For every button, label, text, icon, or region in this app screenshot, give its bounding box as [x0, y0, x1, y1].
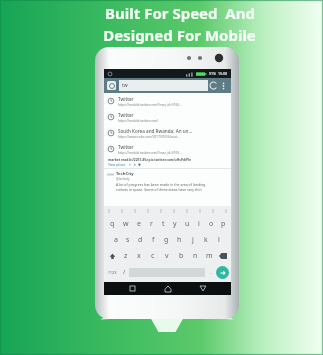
- button[interactable]: y: [169, 216, 181, 232]
- staticText: Built For Speed And: [105, 3, 255, 23]
- button[interactable]: Twitter: [104, 93, 231, 109]
- button[interactable]: f: [147, 232, 160, 248]
- button[interactable]: t: [157, 216, 169, 232]
- staticText: a: [114, 235, 118, 245]
- button[interactable]: x: [132, 248, 146, 264]
- button[interactable]: More options: [219, 81, 228, 90]
- staticText: h: [177, 235, 182, 245]
- staticText: rockets in space. Some of these areas ha…: [116, 187, 202, 192]
- button[interactable]: h: [173, 232, 186, 248]
- button[interactable]: e: [132, 216, 145, 232]
- button[interactable]: k: [199, 232, 212, 248]
- button[interactable]: Recents: [124, 282, 140, 295]
- staticText: q: [110, 219, 115, 229]
- staticText: @techcity: [116, 177, 130, 181]
- button[interactable]: n: [188, 248, 202, 264]
- button[interactable]: South Korea and Rwanda: An un...: [104, 125, 231, 141]
- staticText: l: [218, 235, 220, 245]
- staticText: market read.bi/2257-45z pic.twitter.com/…: [108, 157, 192, 161]
- staticText: o: [209, 219, 214, 229]
- staticText: ← ↻ ♥: [129, 162, 141, 166]
- staticText: i: [198, 219, 200, 229]
- button[interactable]: c: [146, 248, 160, 264]
- staticText: w: [123, 219, 129, 229]
- button[interactable]: g: [160, 232, 173, 248]
- staticText: https://mobile.twitter.com/?max_id=9166.…: [118, 103, 182, 107]
- staticText: 91% 15:08: [209, 71, 228, 76]
- button[interactable]: History: [107, 81, 116, 90]
- staticText: /: [123, 268, 126, 276]
- staticText: Designed For Mobile: [103, 25, 256, 45]
- button[interactable]: l: [212, 232, 225, 248]
- staticText: Twitter: [118, 144, 134, 150]
- button[interactable]: s: [122, 232, 134, 248]
- staticText: y: [173, 219, 177, 229]
- staticText: TechCity: [116, 171, 134, 177]
- button[interactable]: d: [134, 232, 147, 248]
- button[interactable]: .: [205, 265, 216, 279]
- staticText: tw: [122, 82, 128, 89]
- button[interactable]: j: [186, 232, 199, 248]
- button[interactable]: m: [202, 248, 216, 264]
- staticText: https://www.cnbc.com/2017/09/26/sout...: [118, 135, 180, 139]
- button[interactable]: a: [110, 232, 122, 248]
- staticText: z: [124, 251, 128, 261]
- staticText: .: [210, 268, 212, 276]
- staticText: m: [206, 251, 213, 261]
- button[interactable]: tw: [119, 80, 208, 91]
- staticText: f: [152, 235, 155, 245]
- button[interactable]: v: [160, 248, 174, 264]
- staticText: p: [221, 219, 226, 229]
- staticText: e: [137, 219, 141, 229]
- button[interactable]: Twitter: [104, 109, 231, 125]
- staticText: A lot of progress has been made in the a…: [116, 182, 206, 187]
- button[interactable]: o: [205, 216, 217, 232]
- staticText: b: [179, 251, 184, 261]
- button[interactable]: r: [145, 216, 157, 232]
- staticText: g: [164, 235, 169, 245]
- staticText: View photo: [108, 162, 126, 166]
- staticText: v: [165, 251, 169, 261]
- button[interactable]: Home: [160, 282, 176, 295]
- staticText: r: [150, 219, 153, 229]
- button[interactable]: i: [193, 216, 205, 232]
- staticText: c: [151, 251, 155, 261]
- button[interactable]: Reload: [208, 80, 219, 91]
- staticText: https://mobile.twitter.com/: [118, 119, 159, 123]
- staticText: d: [138, 235, 143, 245]
- staticText: s: [126, 235, 130, 245]
- staticText: x: [137, 251, 141, 261]
- staticText: ?123: [108, 270, 117, 275]
- staticText: Twitter: [118, 112, 134, 118]
- staticText: j: [192, 235, 194, 245]
- button[interactable]: /: [119, 265, 129, 279]
- staticText: Twitter: [118, 96, 134, 102]
- button[interactable]: w: [119, 216, 132, 232]
- staticText: n: [193, 251, 198, 261]
- staticText: u: [185, 219, 190, 229]
- button[interactable]: ?123: [106, 265, 119, 279]
- button[interactable]: u: [181, 216, 193, 232]
- staticText: https://mobile.twitter.com/?max_id=9165.…: [118, 151, 182, 155]
- button[interactable]: b: [174, 248, 188, 264]
- button[interactable]: Back: [195, 282, 211, 295]
- button[interactable]: z: [119, 248, 132, 264]
- button[interactable]: Backspace: [216, 248, 229, 264]
- staticText: t: [162, 219, 165, 229]
- staticText: k: [204, 235, 208, 245]
- button[interactable]: Search: [216, 266, 229, 279]
- staticText: South Korea and Rwanda: An un...: [118, 128, 193, 134]
- button[interactable]: q: [106, 216, 119, 232]
- button[interactable]: Twitter: [104, 141, 231, 157]
- button[interactable]: p: [217, 216, 229, 232]
- button[interactable]: Shift: [106, 248, 119, 264]
